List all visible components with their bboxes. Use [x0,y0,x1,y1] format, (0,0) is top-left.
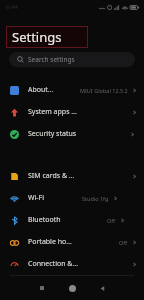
staticText: Off [107,217,116,224]
staticText: Bluetooth [28,215,61,225]
button[interactable]: Security status [0,123,144,145]
staticText: SIM cards & mobile networks [28,171,79,181]
staticText: MIUI Global 12.5.2 [80,87,128,94]
button[interactable]: SIM cards & mobile networks [0,165,144,187]
staticText: Security status [28,129,77,139]
button[interactable]: Portable hotspot [0,231,144,253]
button[interactable]: Connection & sharing [0,253,144,275]
button[interactable]: Recent apps [27,276,57,300]
staticText: Studio 1fg [82,195,109,202]
button[interactable]: About phone [0,79,144,101]
button[interactable]: System apps updater [0,101,144,123]
button[interactable]: Wi-Fi [0,187,144,209]
button[interactable]: Search settings [9,52,135,67]
staticText: 6:44 [6,3,18,11]
staticText: Off [119,239,128,246]
button[interactable]: Bluetooth [0,209,144,231]
staticText: Search settings [28,55,75,64]
staticText: Portable hotspot [28,237,73,247]
staticText: Settings [12,28,62,46]
button[interactable]: Back [87,276,117,300]
staticText: Wi-Fi [28,193,45,203]
staticText: Connection & sharing [28,259,79,269]
staticText: System apps updater [28,107,79,117]
button[interactable]: Home [57,276,87,300]
staticText: About phone [28,85,54,95]
